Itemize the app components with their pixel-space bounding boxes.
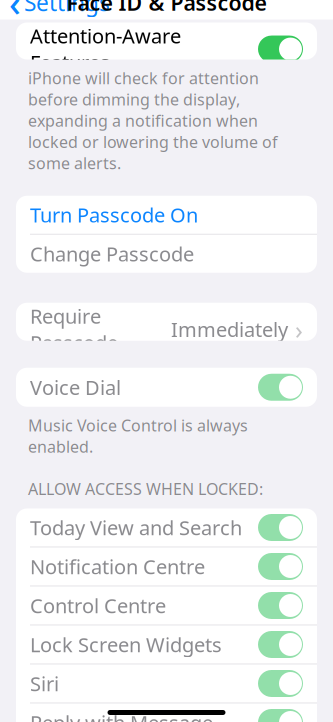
button[interactable]: Require Passcode xyxy=(16,303,317,341)
staticText: ‹ xyxy=(9,0,21,26)
staticText: Notification Centre xyxy=(30,553,205,580)
staticText: › xyxy=(295,312,303,346)
staticText: Lock Screen Widgets xyxy=(30,631,222,658)
staticText: Attention-Aware Features xyxy=(30,22,181,76)
staticText: ALLOW ACCESS WHEN LOCKED: xyxy=(28,478,263,499)
staticText: Reply with Message xyxy=(30,709,213,722)
staticText: Siri xyxy=(30,670,59,697)
button[interactable]: Voice Dial xyxy=(16,368,317,407)
button[interactable]: Turn Passcode On xyxy=(16,196,317,234)
button[interactable]: Change Passcode xyxy=(16,235,317,273)
staticText: Face ID & Passcode xyxy=(66,0,266,17)
staticText: iPhone will check for attention before d… xyxy=(28,67,278,174)
staticText: Control Centre xyxy=(30,592,166,619)
staticText: Settings xyxy=(24,0,110,18)
staticText: Change Passcode xyxy=(30,240,194,267)
button[interactable]: Lock Screen Widgets xyxy=(16,625,317,663)
button[interactable]: Today View and Search xyxy=(16,508,317,546)
staticText: Turn Passcode On xyxy=(30,201,198,228)
staticText: Require Passcode xyxy=(30,303,118,356)
button[interactable]: ‹ xyxy=(0,0,110,29)
staticText: Immediately xyxy=(171,316,288,343)
button[interactable]: Control Centre xyxy=(16,586,317,624)
button[interactable]: Attention-Aware Features xyxy=(16,22,317,59)
staticText: Today View and Search xyxy=(30,514,242,541)
staticText: Voice Dial xyxy=(30,374,121,401)
button[interactable]: Siri xyxy=(16,664,317,702)
staticText: Music Voice Control is always enabled. xyxy=(28,415,248,457)
button[interactable]: Notification Centre xyxy=(16,547,317,585)
button[interactable]: Reply with Message xyxy=(16,703,317,722)
